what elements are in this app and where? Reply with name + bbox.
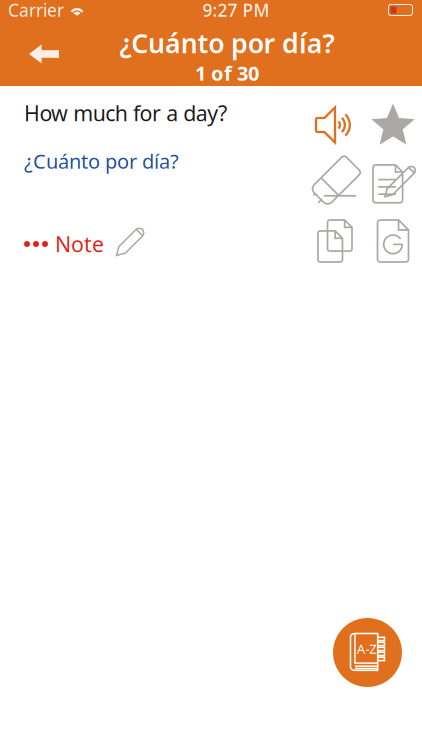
button[interactable]: Back [12,30,76,78]
button[interactable]: Edit note [111,229,145,259]
staticText: ¿Cuánto por día? [24,148,179,174]
button[interactable]: Dictionary [333,618,402,687]
staticText: Carrier [8,0,64,21]
staticText: A-Z [357,640,377,657]
staticText: How much for a day? [24,99,227,127]
button[interactable]: Play audio [306,96,364,154]
staticText: ¿Cuánto por día? [119,25,334,61]
button[interactable]: Search on Google [364,212,422,270]
button[interactable]: Favourite [364,96,422,154]
staticText: Note [55,230,104,258]
button[interactable]: Erase [306,154,364,212]
button[interactable]: Copy [306,212,364,270]
staticText: 9:27 PM [202,0,269,21]
staticText: 1 of 30 [195,60,259,86]
button[interactable]: Edit [364,154,422,212]
